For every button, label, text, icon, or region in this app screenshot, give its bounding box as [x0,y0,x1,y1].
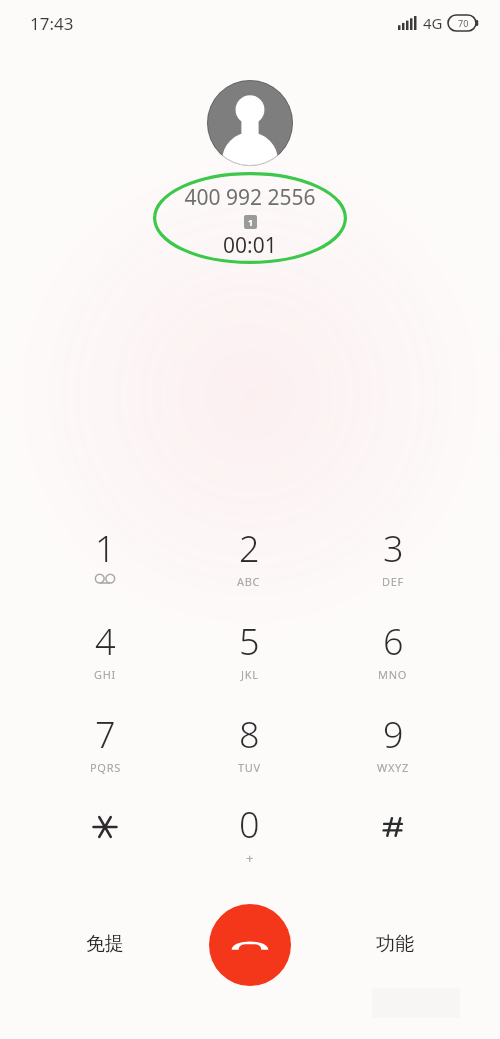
staticText: 17:43 [30,12,74,35]
button[interactable]: 7 [49,710,161,786]
staticText: DEF [382,574,404,589]
button[interactable]: 8 [193,710,305,786]
staticText: 0 [239,800,260,849]
staticText: 功能 [376,932,414,956]
staticText: GHI [94,667,116,682]
staticText: 7 [95,710,116,759]
button[interactable]: 9 [337,710,449,786]
button[interactable] [49,800,161,876]
staticText: 400 992 2556 [184,183,316,212]
staticText: 免提 [86,932,124,956]
button[interactable]: 2 [193,524,305,600]
staticText: + [246,849,254,867]
staticText: 1 [248,216,254,228]
button[interactable] [337,800,449,876]
staticText: 3 [383,524,404,573]
staticText: 00:01 [223,231,277,260]
staticText: 2 [239,524,260,573]
staticText: 4G [423,13,443,33]
button[interactable]: 0 [193,800,305,876]
button[interactable]: 1 [49,524,161,600]
staticText: JKL [241,667,259,682]
staticText: ABC [237,574,261,589]
staticText: 6 [383,617,404,666]
button[interactable]: 6 [337,617,449,693]
staticText: WXYZ [377,760,409,775]
button[interactable]: 功能 [350,918,440,970]
button[interactable]: 4 [49,617,161,693]
staticText: 4 [95,617,116,666]
staticText: 70 [458,17,469,29]
staticText: PQRS [90,760,121,775]
staticText: 5 [239,617,260,666]
staticText: MNO [378,667,408,682]
button[interactable]: 3 [337,524,449,600]
staticText: 1 [95,524,116,573]
button[interactable]: End call [209,904,291,986]
button[interactable]: 5 [193,617,305,693]
staticText: 9 [383,710,404,759]
staticText: 8 [239,710,260,759]
staticText: TUV [238,760,261,775]
button[interactable]: 免提 [60,918,150,970]
